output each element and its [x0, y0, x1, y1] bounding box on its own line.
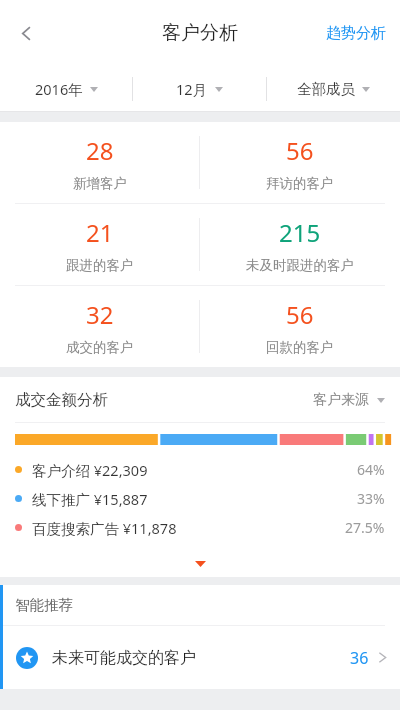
- staticText: 12月: [176, 79, 208, 99]
- button[interactable]: Expand: [177, 552, 223, 576]
- button[interactable]: 32: [0, 286, 199, 367]
- staticText: 成交的客户: [66, 339, 134, 356]
- staticText: 27.5%: [345, 518, 385, 537]
- staticText: 跟进的客户: [66, 257, 134, 274]
- button[interactable]: 全部成员: [267, 66, 400, 112]
- staticText: 33%: [357, 489, 385, 508]
- button[interactable]: 56: [200, 122, 400, 203]
- button[interactable]: 56: [200, 286, 400, 367]
- button[interactable]: 21: [0, 204, 199, 285]
- button[interactable]: 28: [0, 122, 199, 203]
- staticText: 客户来源: [313, 391, 369, 409]
- staticText: 36: [350, 647, 369, 669]
- staticText: 28: [86, 134, 114, 167]
- button[interactable]: 百度搜索广告 ¥11,878: [0, 513, 400, 542]
- staticText: 64%: [357, 460, 385, 479]
- button[interactable]: 客户介绍 ¥22,309: [0, 455, 400, 484]
- button[interactable]: 客户来源: [309, 385, 389, 415]
- staticText: 百度搜索广告 ¥11,878: [32, 518, 177, 538]
- staticText: 21: [86, 216, 114, 249]
- staticText: 未来可能成交的客户: [52, 648, 196, 668]
- staticText: 2016年: [35, 79, 83, 99]
- staticText: 全部成员: [297, 80, 355, 98]
- staticText: 56: [286, 134, 314, 167]
- staticText: 32: [86, 298, 114, 331]
- staticText: 智能推荐: [15, 596, 73, 614]
- staticText: 趋势分析: [326, 24, 386, 43]
- button[interactable]: 2016年: [0, 66, 132, 112]
- button[interactable]: 趋势分析: [312, 12, 400, 55]
- staticText: 56: [286, 298, 314, 331]
- staticText: 成交金额分析: [15, 390, 108, 410]
- staticText: 新增客户: [73, 175, 127, 192]
- button[interactable]: 线下推广 ¥15,887: [0, 484, 400, 513]
- staticText: 客户介绍 ¥22,309: [32, 460, 148, 480]
- button[interactable]: Back: [0, 5, 52, 61]
- button[interactable]: 215: [200, 204, 400, 285]
- staticText: 未及时跟进的客户: [246, 257, 354, 274]
- button[interactable]: 12月: [133, 66, 266, 112]
- staticText: 拜访的客户: [266, 175, 334, 192]
- staticText: 215: [279, 216, 321, 249]
- staticText: 回款的客户: [266, 339, 334, 356]
- staticText: 线下推广 ¥15,887: [32, 489, 148, 509]
- button[interactable]: 未来可能成交的客户: [3, 626, 400, 689]
- staticText: 客户分析: [162, 21, 238, 45]
